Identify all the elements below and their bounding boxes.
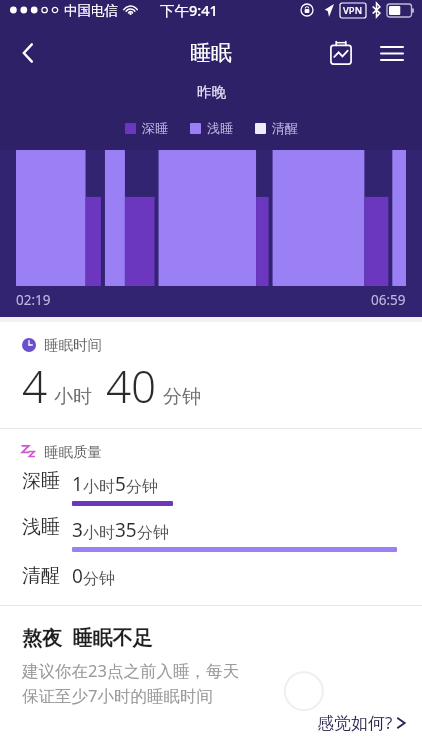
button[interactable]: 睡眠时间 — [0, 322, 422, 428]
button[interactable]: 感觉如何? — [317, 711, 408, 734]
staticText: 5 — [115, 471, 126, 497]
staticText: 02:19 — [16, 291, 51, 309]
staticText: 熬夜 睡眠不足 — [22, 624, 153, 651]
staticText: 昨晚 — [197, 83, 226, 101]
staticText: 中国电信 — [64, 2, 118, 19]
staticText: 分钟 — [83, 569, 115, 589]
staticText: 感觉如何? — [317, 711, 393, 734]
staticText: 分钟 — [137, 523, 169, 543]
staticText: 分钟 — [126, 477, 158, 497]
staticText: 0 — [72, 563, 83, 589]
staticText: 睡眠时间 — [44, 336, 102, 354]
staticText: 建议你在23点之前入睡，每天 — [22, 659, 239, 682]
button[interactable]: Menu — [372, 33, 412, 73]
staticText: 小时 — [83, 477, 115, 497]
staticText: 深睡 — [142, 120, 168, 136]
staticText: VPN — [343, 4, 363, 17]
staticText: 睡眠 — [190, 40, 232, 66]
staticText: 35 — [115, 517, 137, 543]
staticText: 分钟 — [163, 385, 201, 409]
staticText: 清醒 — [272, 120, 298, 136]
button[interactable]: Back — [6, 31, 50, 75]
staticText: 下午9:41 — [160, 0, 218, 20]
staticText: 浅睡 — [22, 515, 60, 539]
staticText: 1 — [72, 471, 83, 497]
staticText: 浅睡 — [207, 120, 233, 136]
staticText: 清醒 — [22, 564, 60, 588]
button[interactable]: Sleep history — [320, 32, 362, 74]
staticText: 睡眠质量 — [44, 443, 102, 461]
staticText: 小时 — [54, 385, 92, 409]
staticText: 4 — [22, 356, 48, 416]
staticText: 深睡 — [22, 469, 60, 493]
staticText: 06:59 — [371, 291, 406, 309]
staticText: 3 — [72, 517, 83, 543]
staticText: 40 — [106, 356, 157, 416]
staticText: 小时 — [83, 523, 115, 543]
staticText: 保证至少7小时的睡眠时间 — [22, 684, 213, 707]
